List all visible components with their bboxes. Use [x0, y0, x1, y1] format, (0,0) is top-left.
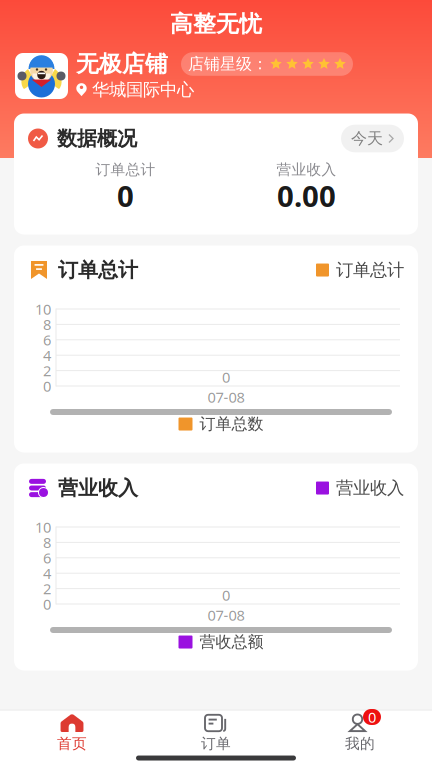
- staticText: 6: [43, 330, 51, 350]
- staticText: 0: [43, 376, 51, 396]
- staticText: 订单总计: [58, 258, 138, 282]
- staticText: 营收总额: [199, 632, 263, 652]
- staticText: 4: [43, 563, 51, 583]
- button[interactable]: 订单: [144, 710, 288, 755]
- staticText: 今天: [351, 129, 383, 148]
- staticText: 无极店铺: [76, 50, 168, 78]
- staticText: 6: [43, 548, 51, 568]
- staticText: 10: [35, 299, 51, 319]
- staticText: 2: [43, 361, 51, 380]
- staticText: 0: [368, 707, 376, 727]
- staticText: 2: [43, 579, 51, 598]
- staticText: 10: [35, 517, 51, 537]
- staticText: 8: [43, 315, 51, 334]
- staticText: 订单总数: [199, 414, 263, 434]
- staticText: 我的: [345, 734, 375, 752]
- button[interactable]: 首页: [0, 710, 144, 755]
- staticText: 营业收入: [276, 160, 336, 178]
- staticText: 0: [222, 367, 230, 387]
- staticText: 8: [43, 533, 51, 552]
- staticText: 数据概况: [57, 126, 137, 151]
- staticText: 0: [117, 176, 134, 215]
- staticText: 订单: [201, 734, 231, 752]
- staticText: 首页: [57, 734, 87, 752]
- staticText: 0.00: [277, 176, 336, 215]
- staticText: 高整无忧: [170, 10, 262, 38]
- button[interactable]: 0: [288, 710, 432, 755]
- staticText: 0: [222, 585, 230, 605]
- staticText: 营业收入: [336, 477, 404, 499]
- staticText: 华城国际中心: [92, 79, 194, 100]
- staticText: 07-08: [207, 605, 244, 625]
- button[interactable]: 今天: [341, 125, 404, 152]
- staticText: 订单总计: [95, 160, 155, 178]
- staticText: 营业收入: [58, 476, 138, 500]
- staticText: 订单总计: [336, 259, 404, 281]
- staticText: 店铺星级：: [188, 54, 268, 74]
- staticText: 07-08: [207, 387, 244, 407]
- staticText: 4: [43, 345, 51, 365]
- staticText: 0: [43, 594, 51, 614]
